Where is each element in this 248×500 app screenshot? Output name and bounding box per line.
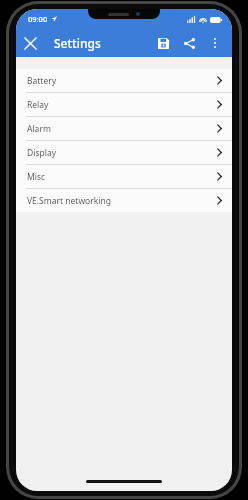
button[interactable]: VE.Smart networking — [16, 189, 232, 212]
staticText: Battery — [27, 75, 57, 87]
staticText: Alarm — [27, 123, 51, 135]
button[interactable]: Relay — [16, 93, 232, 116]
button[interactable]: More options — [202, 30, 228, 56]
staticText: Misc — [27, 171, 46, 183]
button[interactable]: Misc — [16, 165, 232, 188]
staticText: Display — [27, 147, 56, 159]
button[interactable]: Save — [150, 30, 176, 56]
button[interactable]: Battery — [16, 69, 232, 92]
staticText: Relay — [27, 99, 49, 111]
staticText: 09:00 — [28, 14, 48, 24]
button[interactable]: Share — [176, 30, 202, 56]
staticText: VE.Smart networking — [27, 195, 111, 207]
button[interactable]: Alarm — [16, 117, 232, 140]
staticText: Settings — [54, 35, 101, 51]
button[interactable]: Close — [16, 29, 44, 57]
button[interactable]: Display — [16, 141, 232, 164]
